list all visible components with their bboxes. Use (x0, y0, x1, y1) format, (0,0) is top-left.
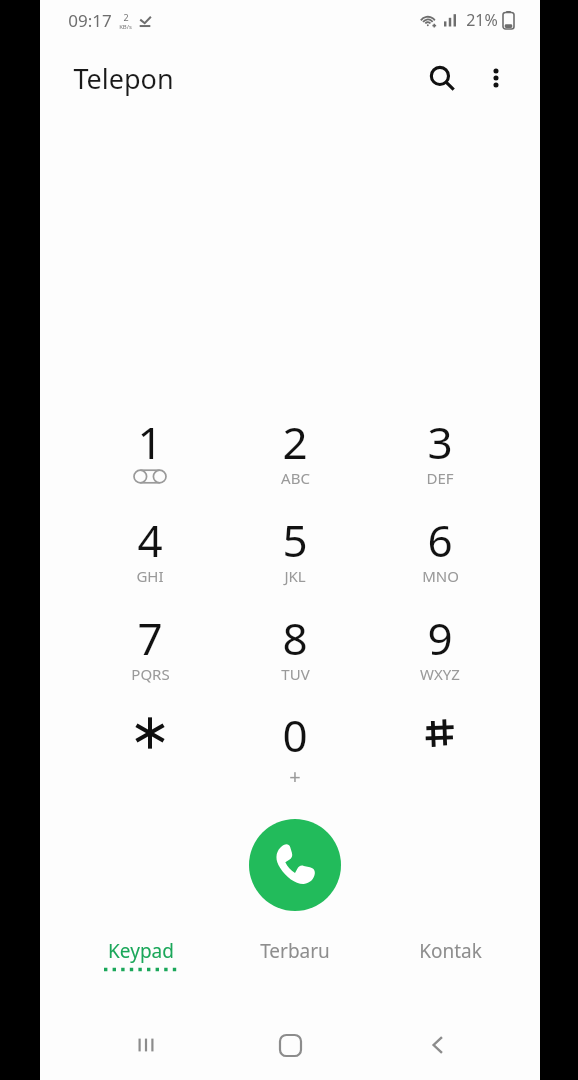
button[interactable]: Back (402, 1010, 474, 1080)
button[interactable]: 0 (233, 705, 357, 797)
staticText: DEF (426, 468, 454, 488)
button[interactable]: 7 (88, 608, 212, 700)
button[interactable] (88, 705, 212, 797)
staticText: Telepon (73, 60, 174, 97)
button[interactable]: Keypad (63, 938, 219, 994)
staticText: GHI (136, 566, 164, 586)
staticText: MNO (422, 566, 459, 586)
staticText: 3 (427, 412, 453, 468)
staticText: 4 (137, 510, 163, 566)
button[interactable]: 2 (233, 412, 357, 504)
staticText: 0 (282, 705, 308, 761)
staticText: Keypad (108, 938, 174, 964)
button[interactable]: 9 (378, 608, 502, 700)
staticText: JKL (284, 566, 306, 586)
staticText: 7 (137, 608, 163, 664)
staticText: 8 (282, 608, 308, 664)
button[interactable]: Call (249, 819, 341, 911)
staticText: Kontak (419, 938, 482, 964)
staticText: 2 (123, 11, 129, 23)
staticText: + (289, 763, 301, 790)
staticText: TUV (281, 664, 310, 684)
button[interactable]: Kontak (372, 938, 528, 994)
staticText: 09:17 (68, 9, 112, 32)
button[interactable]: Home (254, 1010, 326, 1080)
staticText: 9 (427, 608, 453, 664)
button[interactable]: 8 (233, 608, 357, 700)
button[interactable]: 6 (378, 510, 502, 602)
button[interactable]: More options (472, 54, 520, 102)
staticText: 1 (137, 412, 163, 468)
staticText: 2 (282, 412, 308, 468)
button[interactable] (378, 705, 502, 797)
staticText: 21% (466, 9, 498, 31)
button[interactable]: 1 (88, 412, 212, 504)
button[interactable]: 4 (88, 510, 212, 602)
staticText: 5 (282, 510, 308, 566)
staticText: KB/s (119, 23, 132, 31)
staticText: PQRS (131, 664, 170, 684)
staticText: WXYZ (420, 664, 460, 684)
button[interactable]: 5 (233, 510, 357, 602)
button[interactable]: Recents (110, 1010, 182, 1080)
button[interactable]: Terbaru (217, 938, 373, 994)
button[interactable]: Search (418, 54, 466, 102)
staticText: Terbaru (260, 938, 330, 964)
staticText: ABC (281, 468, 310, 488)
staticText: 6 (427, 510, 453, 566)
button[interactable]: 3 (378, 412, 502, 504)
